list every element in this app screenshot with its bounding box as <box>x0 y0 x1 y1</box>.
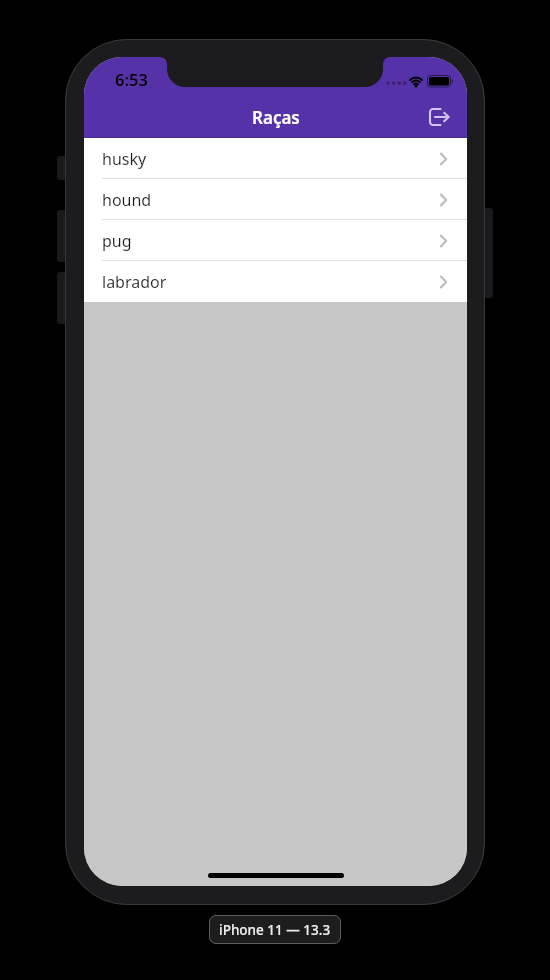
button[interactable]: husky <box>84 138 467 179</box>
staticText: husky <box>102 148 147 170</box>
staticText: 6:53 <box>115 68 148 90</box>
staticText: Raças <box>252 106 300 129</box>
staticText: iPhone 11 — 13.3 <box>219 921 331 939</box>
staticText: hound <box>102 189 152 211</box>
staticText: labrador <box>102 271 167 293</box>
button[interactable]: labrador <box>84 261 467 302</box>
staticText: pug <box>102 230 132 252</box>
button[interactable]: hound <box>84 179 467 220</box>
button[interactable]: pug <box>84 220 467 261</box>
button[interactable] <box>426 103 458 131</box>
